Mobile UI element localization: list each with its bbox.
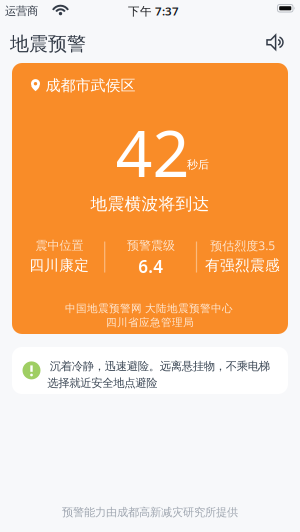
staticText: 成都市武侯区 (45, 76, 135, 94)
staticText: 地震预警 (10, 33, 86, 55)
staticText: 四川康定 (29, 257, 89, 274)
staticText: 地震横波将到达 (90, 194, 209, 214)
button[interactable]: 预警提示音 (263, 32, 288, 56)
staticText: 选择就近安全地点避险 (47, 376, 157, 390)
staticText: 四川省应急管理局 (106, 316, 194, 329)
staticText: 震中位置 (35, 238, 83, 253)
staticText: 沉着冷静，迅速避险。远离悬挂物，不乘电梯 (50, 359, 270, 373)
staticText: 下午 7:37 (128, 4, 179, 18)
staticText: 运营商 (5, 4, 38, 18)
staticText: 预警能力由成都高新减灾研究所提供 (62, 506, 238, 519)
staticText: 中国地震预警网 大陆地震预警中心 (65, 302, 233, 315)
staticText: 有强烈震感 (205, 257, 280, 274)
staticText: 预警震级 (127, 238, 175, 253)
staticText: 秒后 (187, 158, 209, 171)
staticText: 预估烈度3.5 (210, 238, 275, 253)
staticText: 6.4 (138, 255, 163, 277)
staticText: 42 (115, 110, 189, 194)
